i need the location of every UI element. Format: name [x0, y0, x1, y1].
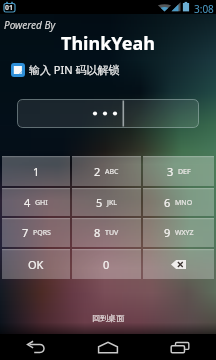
staticText: WXYZ [175, 228, 194, 238]
other: Delete [171, 260, 186, 269]
staticText: ThinkYeah [0, 31, 216, 56]
button[interactable]: 0 [72, 249, 141, 279]
button[interactable]: OK [2, 249, 70, 279]
staticText: 0 [103, 257, 110, 272]
staticText: 01 [5, 3, 14, 13]
staticText: GHI [35, 198, 48, 208]
button[interactable]: 4 [2, 188, 70, 216]
staticText: DEF [178, 167, 191, 177]
staticText: 8 [94, 225, 101, 240]
staticText: 7 [22, 225, 29, 240]
staticText: 2 [94, 164, 101, 179]
button[interactable]: 8 [72, 218, 141, 247]
button[interactable] [17, 99, 199, 128]
button[interactable]: Back [0, 334, 72, 360]
staticText: 3 [167, 164, 174, 179]
button[interactable]: 1 [2, 156, 70, 186]
staticText: TUV [105, 228, 119, 238]
button[interactable]: 7 [2, 218, 70, 247]
button[interactable]: Delete [143, 249, 214, 279]
button[interactable]: Recent apps [144, 334, 216, 360]
staticText: JKL [107, 198, 117, 208]
staticText: PQRS [33, 228, 51, 238]
button[interactable]: 2 [72, 156, 141, 186]
staticText: 6 [164, 195, 171, 210]
staticText: 9 [164, 225, 171, 240]
button[interactable]: 3 [143, 156, 214, 186]
staticText: OK [28, 257, 44, 272]
staticText: ABC [105, 167, 119, 177]
staticText: 回到桌面 [0, 313, 216, 323]
staticText: 3:08 [194, 2, 214, 16]
button[interactable]: Home [72, 334, 144, 360]
staticText: 1 [33, 164, 40, 179]
button[interactable]: 6 [143, 188, 214, 216]
button[interactable]: 5 [72, 188, 141, 216]
staticText: Powered By [4, 18, 56, 32]
button[interactable]: 9 [143, 218, 214, 247]
staticText: 5 [96, 195, 103, 210]
staticText: 输入 PIN 码以解锁 [29, 62, 120, 77]
staticText: MNO [175, 198, 193, 208]
staticText: 4 [24, 195, 31, 210]
